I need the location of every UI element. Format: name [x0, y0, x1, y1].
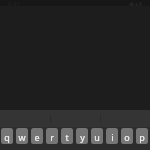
button[interactable]: y [76, 128, 88, 144]
staticText: w [18, 131, 26, 143]
staticText: u [94, 131, 100, 143]
button[interactable]: r [46, 128, 58, 144]
button[interactable]: u [91, 128, 103, 144]
button[interactable]: e [31, 128, 43, 144]
other: Keyboard [0, 110, 150, 150]
staticText: p [139, 131, 145, 143]
staticText: t [65, 131, 69, 143]
button[interactable]: w [16, 128, 28, 144]
button[interactable]: t [61, 128, 73, 144]
button[interactable]: q [1, 128, 13, 144]
button[interactable]: p [136, 128, 148, 144]
staticText: r [50, 131, 54, 143]
staticText: e [34, 131, 40, 143]
staticText: o [124, 131, 130, 143]
button[interactable]: i [106, 128, 118, 144]
staticText: ●▲▮ [129, 0, 143, 6]
staticText: q [4, 131, 10, 143]
staticText: i [111, 131, 114, 143]
staticText: y [80, 131, 85, 143]
button[interactable]: o [121, 128, 133, 144]
